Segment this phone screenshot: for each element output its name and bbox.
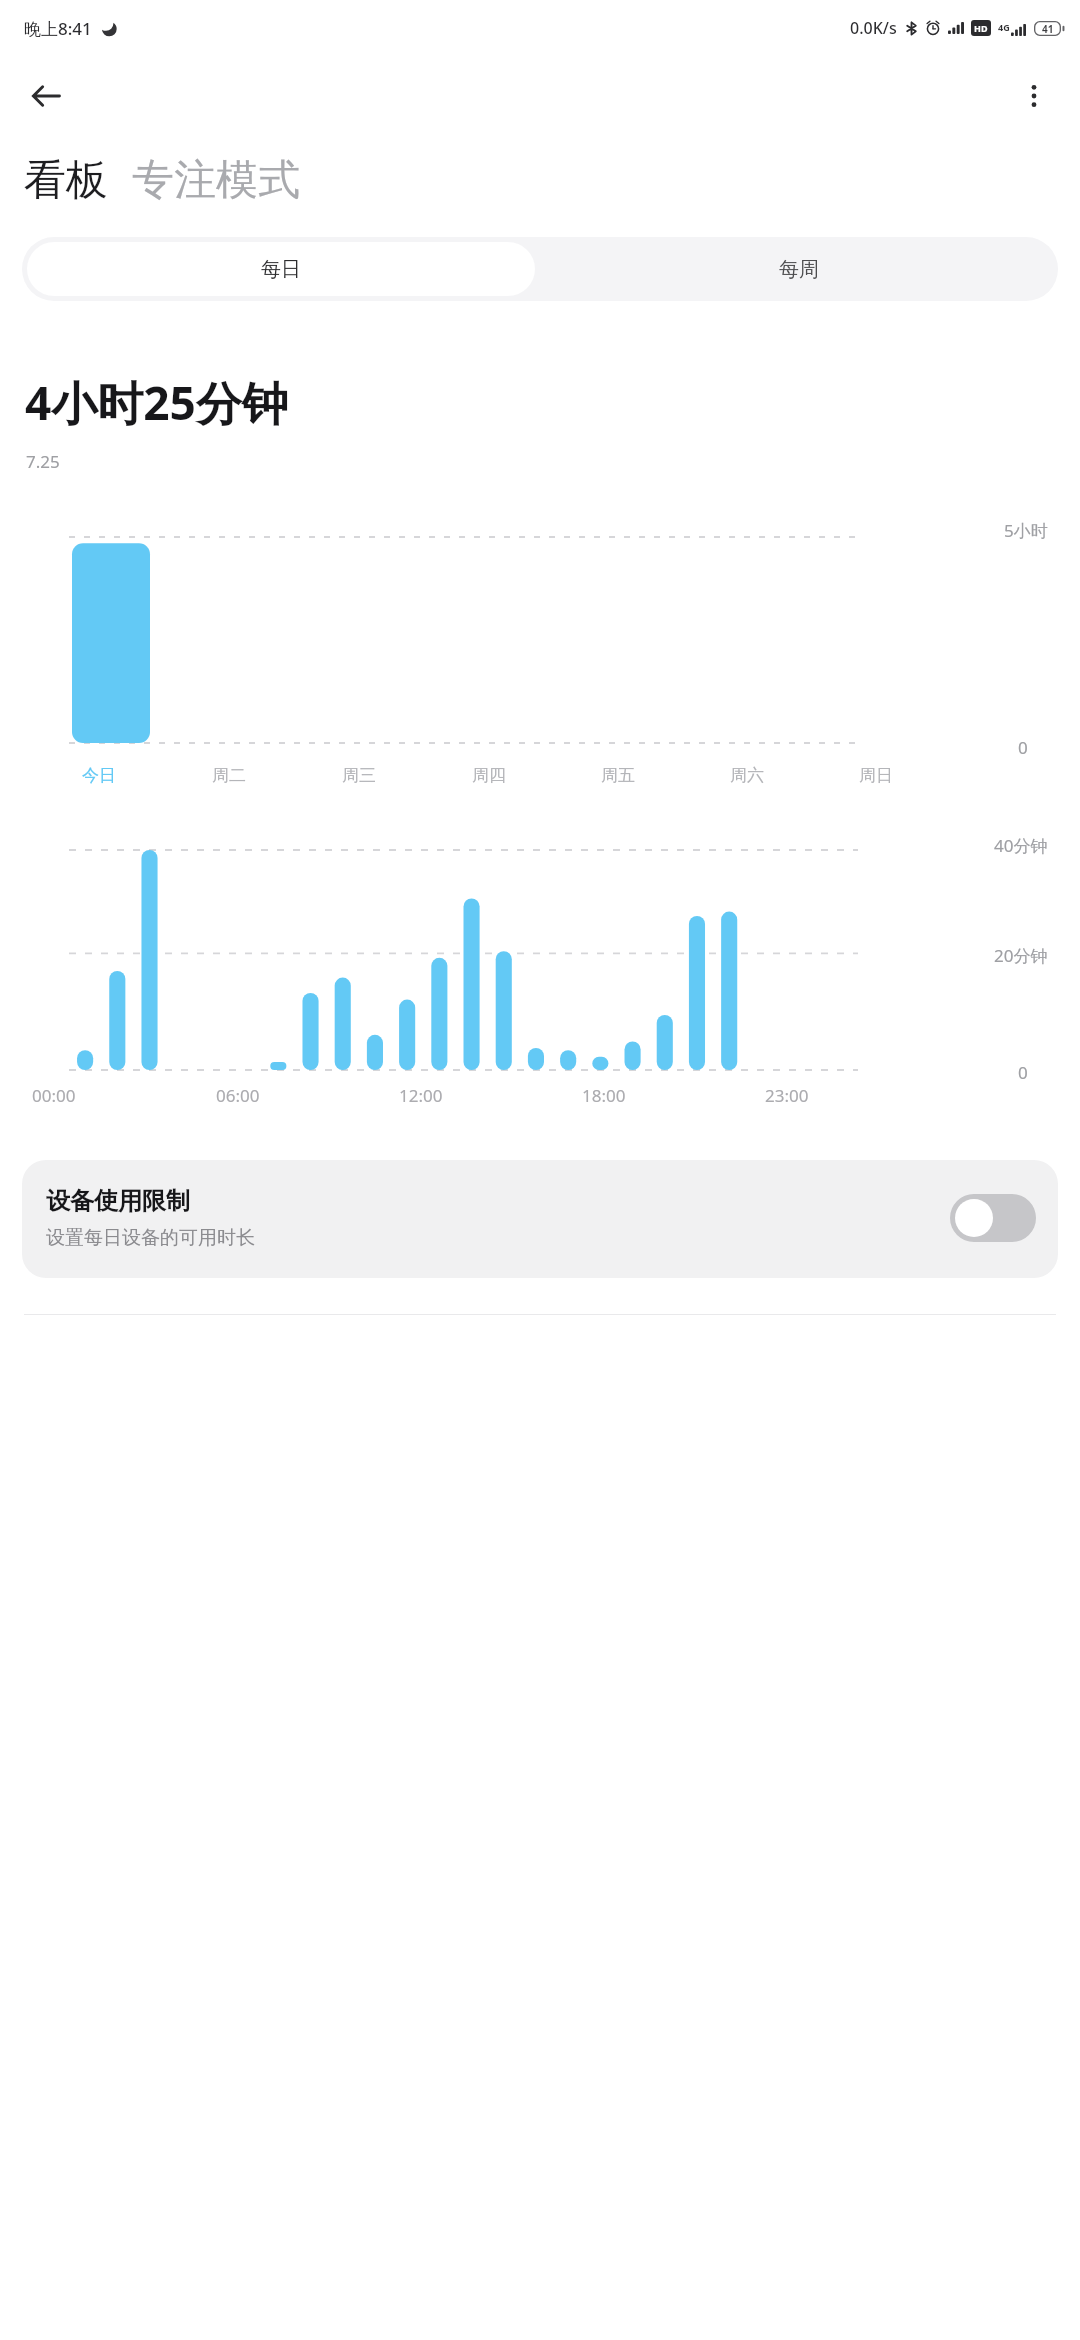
button[interactable]: 设备使用限制 bbox=[22, 1160, 1058, 1278]
staticText: 专注模式 bbox=[132, 154, 300, 207]
staticText: 41 bbox=[1042, 22, 1054, 36]
button[interactable]: 周五 bbox=[553, 765, 682, 786]
staticText: 晚上8:41 bbox=[24, 17, 92, 40]
button[interactable]: 周二 bbox=[164, 765, 294, 786]
button[interactable]: 看板 bbox=[24, 154, 108, 207]
staticText: 4小时25分钟 bbox=[25, 371, 288, 434]
staticText: 00:00 bbox=[32, 1084, 76, 1107]
staticText: 40分钟 bbox=[994, 834, 1048, 857]
staticText: 18:00 bbox=[582, 1084, 626, 1107]
button[interactable]: 每日 bbox=[27, 242, 535, 296]
staticText: 4G bbox=[998, 21, 1010, 33]
button[interactable]: 周四 bbox=[424, 765, 553, 786]
staticText: 06:00 bbox=[216, 1084, 260, 1107]
staticText: 0 bbox=[1018, 1061, 1028, 1084]
button[interactable]: More options bbox=[1004, 66, 1064, 126]
staticText: 看板 bbox=[24, 154, 108, 207]
staticText: 设备使用限制 bbox=[46, 1186, 190, 1216]
staticText: 7.25 bbox=[26, 450, 60, 473]
button[interactable]: 今日 bbox=[34, 765, 164, 786]
button[interactable]: Device usage limit toggle, off bbox=[950, 1194, 1036, 1242]
button[interactable]: 周六 bbox=[682, 765, 811, 786]
staticText: 每日 bbox=[261, 257, 301, 282]
staticText: 周日 bbox=[859, 765, 893, 786]
staticText: 周四 bbox=[472, 765, 506, 786]
staticText: 0 bbox=[1018, 736, 1028, 759]
staticText: 设置每日设备的可用时长 bbox=[46, 1226, 255, 1250]
staticText: 20分钟 bbox=[994, 944, 1048, 967]
button[interactable]: 周日 bbox=[811, 765, 940, 786]
button[interactable]: 每周 bbox=[540, 237, 1058, 301]
staticText: 0.0K/s bbox=[850, 17, 897, 39]
button[interactable]: 周三 bbox=[294, 765, 424, 786]
button[interactable]: 专注模式 bbox=[132, 154, 300, 207]
staticText: 周三 bbox=[342, 765, 376, 786]
staticText: 周二 bbox=[212, 765, 246, 786]
staticText: HD bbox=[974, 22, 988, 34]
staticText: 23:00 bbox=[765, 1084, 809, 1107]
staticText: 今日 bbox=[82, 765, 116, 786]
staticText: 5小时 bbox=[1004, 519, 1048, 542]
staticText: 12:00 bbox=[399, 1084, 443, 1107]
staticText: 周五 bbox=[601, 765, 635, 786]
staticText: 每周 bbox=[779, 257, 819, 282]
staticText: 周六 bbox=[730, 765, 764, 786]
button[interactable]: Back bbox=[16, 66, 76, 126]
